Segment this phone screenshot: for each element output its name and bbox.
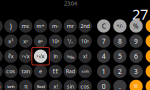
staticText: tanh (7, 84, 14, 89)
staticText: ʸ√x (36, 53, 44, 60)
staticText: 1 (102, 67, 106, 76)
staticText: 3 (134, 67, 138, 76)
button[interactable]: tanh (4, 80, 17, 90)
button[interactable]: 4 (97, 50, 110, 63)
button[interactable]: ʸ√x (34, 50, 47, 63)
button[interactable]: sin (64, 80, 77, 90)
button[interactable]: sinh (78, 65, 92, 78)
button[interactable]: m+ (34, 19, 47, 33)
staticText: 2nd (81, 22, 90, 30)
button[interactable]: ∛x (4, 50, 17, 63)
button[interactable]: π (19, 80, 32, 90)
button[interactable]: 2nd (78, 19, 92, 33)
staticText: m+ (36, 22, 44, 30)
staticText: 0 (102, 82, 106, 90)
staticText: 7 (102, 37, 106, 46)
button[interactable]: tan (19, 65, 32, 78)
button[interactable]: √x (0, 50, 3, 63)
staticText: 23:04 (64, 0, 77, 7)
button[interactable]: 10ˣ (49, 34, 62, 48)
button[interactable]: = (129, 80, 143, 90)
button[interactable]: 1 (97, 65, 110, 78)
button[interactable]: ÷ (146, 19, 150, 33)
staticText: 10ˣ (81, 38, 89, 45)
staticText: ) (10, 22, 12, 30)
staticText: cos (6, 68, 15, 75)
button[interactable]: EE (49, 65, 62, 78)
staticText: +/- (116, 22, 123, 30)
button[interactable]: ¹∕ₓ (64, 34, 77, 48)
button[interactable]: x² (0, 34, 3, 48)
button[interactable]: 10ˣ (78, 34, 92, 48)
button[interactable]: sin (0, 65, 3, 78)
button[interactable]: ) (4, 19, 17, 33)
staticText: ʸ√x (22, 53, 30, 60)
staticText: sin (67, 83, 74, 90)
button[interactable]: 5 (113, 50, 126, 63)
button[interactable]: 3 (129, 65, 143, 78)
button[interactable]: ʸ√x (19, 50, 32, 63)
button[interactable]: 6 (129, 50, 143, 63)
button[interactable]: +/- (113, 19, 126, 33)
staticText: 4 (102, 52, 106, 61)
staticText: tan (22, 68, 30, 75)
button[interactable]: 9 (129, 34, 143, 48)
button[interactable]: 7 (97, 34, 110, 48)
staticText: 10ˣ (51, 38, 59, 45)
button[interactable]: cos (78, 80, 92, 90)
button[interactable]: Rad (64, 65, 77, 78)
staticText: C (102, 22, 106, 30)
button[interactable]: × (146, 34, 150, 48)
staticText: ¹∕ₓ (67, 38, 73, 45)
button[interactable]: m- (49, 19, 62, 33)
staticText: π (24, 83, 27, 90)
button[interactable]: ln (49, 50, 62, 63)
button[interactable]: ( (0, 19, 3, 33)
button[interactable]: . (113, 80, 126, 90)
button[interactable]: e (34, 65, 47, 78)
staticText: = (134, 81, 139, 90)
button[interactable]: cosh (0, 80, 3, 90)
staticText: x! (83, 53, 87, 60)
staticText: xʸ (23, 38, 28, 45)
button[interactable]: x! (78, 50, 92, 63)
button[interactable]: x³ (4, 34, 17, 48)
staticText: e (39, 68, 42, 75)
button[interactable]: xʸ (19, 34, 32, 48)
staticText: 2 (118, 67, 122, 76)
staticText: ∛x (8, 53, 14, 60)
button[interactable]: C (97, 19, 110, 33)
staticText: Rad (66, 68, 75, 75)
staticText: 5 (118, 52, 122, 61)
staticText: cos (81, 83, 90, 90)
button[interactable]: % (129, 19, 143, 33)
staticText: ln (53, 53, 57, 60)
staticText: mc (22, 22, 30, 30)
button[interactable]: − (146, 50, 150, 63)
button[interactable]: Rand (34, 80, 47, 90)
button[interactable]: eˣ (34, 34, 47, 48)
staticText: eˣ (38, 38, 43, 45)
button[interactable]: 8 (113, 34, 126, 48)
button[interactable]: 0 (97, 80, 110, 90)
button[interactable]: mc (19, 19, 32, 33)
staticText: 27 (132, 4, 148, 24)
staticText: x³ (8, 38, 13, 45)
button[interactable]: mr (64, 19, 77, 33)
button[interactable] (146, 80, 150, 90)
staticText: 6 (134, 52, 138, 61)
staticText: m- (52, 22, 59, 30)
staticText: 8 (118, 37, 122, 46)
staticText: % (133, 22, 139, 30)
staticText: x! (53, 83, 57, 90)
button[interactable]: + (146, 65, 150, 78)
button[interactable]: cos (4, 65, 17, 78)
button[interactable]: log₁₀ (64, 50, 77, 63)
button[interactable]: 2 (113, 65, 126, 78)
staticText: sinh (82, 69, 89, 74)
staticText: . (119, 82, 121, 90)
button[interactable]: x! (49, 80, 62, 90)
staticText: 9 (134, 37, 138, 46)
staticText: log₁₀ (67, 53, 74, 59)
staticText: EE (52, 68, 58, 75)
